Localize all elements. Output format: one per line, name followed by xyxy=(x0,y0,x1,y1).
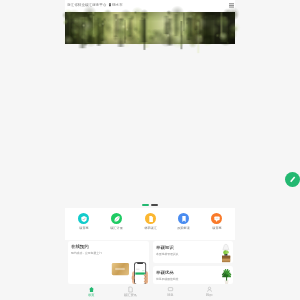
staticText: 消息 xyxy=(167,293,174,297)
staticText: 碳汇资讯 xyxy=(124,293,137,297)
staticText: 优享早碳最佳标准 xyxy=(156,277,179,281)
staticText: 我的 xyxy=(206,293,213,297)
button[interactable]: Menu xyxy=(228,2,234,8)
button[interactable]: 碳普惠 xyxy=(67,213,100,230)
button[interactable]: 早碳优品 xyxy=(153,266,233,284)
button[interactable]: 碳汇计量 xyxy=(100,213,133,230)
staticText: 林草碳汇 xyxy=(144,226,157,230)
staticText: 早碳优品 xyxy=(156,270,174,276)
button[interactable]: 政策解读 xyxy=(167,213,200,230)
staticText: 浙江省林业碳汇服务平台 xyxy=(67,3,107,8)
button[interactable]: Edit xyxy=(285,172,300,187)
staticText: 预约成功，公司免费上门 xyxy=(71,251,102,255)
staticText: 政策解读 xyxy=(177,226,190,230)
button[interactable]: 碳汇资讯 xyxy=(117,285,143,297)
button[interactable]: 在线预约 xyxy=(68,241,149,284)
button[interactable]: 林草碳汇 xyxy=(134,213,167,230)
staticText: 在线预约 xyxy=(71,244,89,250)
button[interactable]: 我的 xyxy=(196,285,222,297)
staticText: 碳普惠 xyxy=(79,226,89,230)
button[interactable]: 早碳知识 xyxy=(153,241,233,263)
button[interactable]: 消息 xyxy=(157,285,183,297)
button[interactable]: 首页 xyxy=(78,285,104,297)
button[interactable]: 碳普惠 xyxy=(200,213,233,230)
staticText: 本里地林管理认识 xyxy=(156,252,179,256)
staticText: 首页 xyxy=(88,293,95,297)
staticText: 早碳知识 xyxy=(156,245,174,251)
staticText: 碳普惠 xyxy=(212,226,222,230)
staticText: 碳汇计量 xyxy=(110,226,123,230)
staticText: 丽水市 xyxy=(112,3,123,8)
